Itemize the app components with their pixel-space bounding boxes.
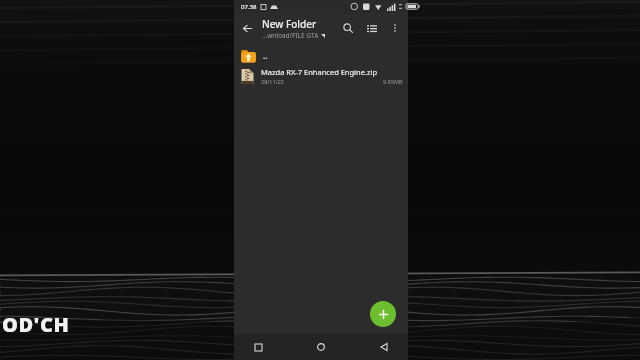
- button[interactable]: View as list: [360, 16, 384, 40]
- staticText: ..: [263, 50, 268, 61]
- button[interactable]: Mazda RX-7 Enhanced Engine.zip: [234, 65, 408, 87]
- button[interactable]: Back: [234, 15, 260, 41]
- button[interactable]: Add: [370, 301, 396, 327]
- button[interactable]: Home: [311, 337, 331, 357]
- button[interactable]: Recents: [248, 337, 268, 357]
- staticText: OD'CH: [2, 311, 70, 338]
- staticText: ...wnload/FILE GTA: [262, 31, 319, 40]
- button[interactable]: ..: [234, 45, 408, 65]
- staticText: New Folder: [262, 17, 317, 31]
- staticText: 07.38: [241, 3, 257, 11]
- staticText: Mazda RX-7 Enhanced Engine.zip: [261, 67, 377, 77]
- button[interactable]: Search: [336, 16, 360, 40]
- staticText: 28/11/22: [261, 78, 284, 85]
- button[interactable]: Back: [374, 337, 394, 357]
- staticText: 9.95MB: [383, 78, 403, 85]
- button[interactable]: More options: [384, 17, 406, 39]
